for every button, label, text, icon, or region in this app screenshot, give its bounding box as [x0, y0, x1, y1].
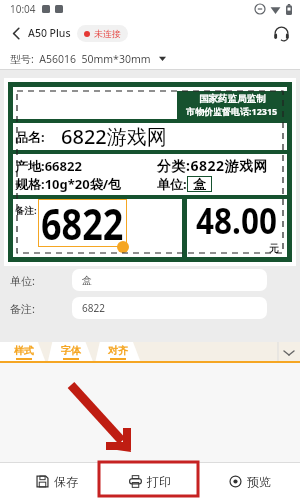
staticText: 预览: [247, 474, 271, 489]
staticText: 市物价监督电话:12315: [186, 105, 278, 117]
button[interactable]: 预览: [200, 463, 300, 500]
button[interactable]: 未连接: [77, 25, 128, 42]
button[interactable]: 字体: [47, 342, 94, 363]
staticText: 品名:: [15, 128, 45, 146]
staticText: 48.00: [196, 196, 278, 245]
staticText: 备注:: [15, 204, 37, 217]
staticText: 对齐: [108, 344, 128, 357]
button[interactable]: [278, 342, 300, 363]
staticText: 字体: [61, 344, 81, 357]
staticText: 产地:66822: [15, 157, 82, 175]
button[interactable]: 型号: A56016 50mm*30mm: [0, 48, 300, 70]
staticText: 单位:: [157, 175, 187, 193]
staticText: 10:04: [10, 2, 36, 16]
staticText: 6822: [82, 301, 105, 315]
staticText: 盒: [193, 176, 206, 192]
button[interactable]: 6822: [72, 297, 267, 319]
button[interactable]: [10, 27, 23, 40]
staticText: 盒: [82, 274, 92, 287]
staticText: 分类:6822游戏网: [157, 156, 268, 175]
staticText: 型号: A56016 50mm*30mm: [10, 52, 151, 66]
staticText: A50 Plus: [28, 26, 71, 40]
staticText: 国家药监局监制: [199, 93, 266, 105]
button[interactable]: 打印: [100, 463, 200, 500]
staticText: 6822游戏网: [61, 123, 167, 150]
staticText: 保存: [54, 474, 78, 489]
button[interactable]: [273, 25, 290, 42]
staticText: 样式: [14, 344, 34, 357]
staticText: 规格:10g*20袋/包: [15, 175, 122, 193]
staticText: 6822: [41, 195, 124, 251]
button[interactable]: 对齐: [94, 342, 141, 363]
staticText: 未连接: [94, 28, 121, 39]
button[interactable]: 保存: [0, 463, 100, 500]
button[interactable]: 盒: [72, 269, 267, 291]
staticText: 备注:: [10, 301, 35, 316]
button[interactable]: 样式: [0, 342, 47, 363]
staticText: 单位:: [10, 273, 35, 288]
staticText: 打印: [147, 474, 171, 489]
staticText: 元: [269, 242, 279, 255]
